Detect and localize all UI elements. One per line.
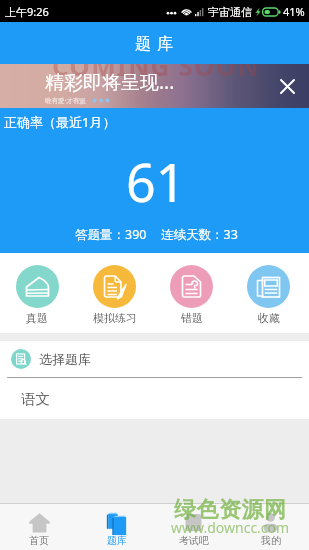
button[interactable]: 真题 xyxy=(0,265,76,325)
staticText: 真题 xyxy=(26,311,48,325)
button[interactable]: 题库 xyxy=(78,504,155,550)
staticText: 题库 xyxy=(107,534,127,547)
staticText: 首页 xyxy=(29,534,49,547)
button[interactable]: 考试吧 xyxy=(155,504,232,550)
button[interactable]: 首页 xyxy=(0,504,78,550)
staticText: 答题量：390 xyxy=(75,226,147,243)
staticText: 绿色资源网 xyxy=(174,496,287,524)
staticText: COMING SOON xyxy=(52,64,260,83)
staticText: 宇宙通信 xyxy=(208,5,252,19)
button[interactable]: 收藏 xyxy=(230,265,307,325)
staticText: 模拟练习 xyxy=(93,311,137,325)
button[interactable]: 我的 xyxy=(232,504,309,550)
button[interactable]: 错题 xyxy=(153,265,230,325)
button[interactable]: 语文 xyxy=(0,378,309,419)
staticText: 收藏 xyxy=(258,311,280,325)
button[interactable]: Close banner xyxy=(265,64,309,108)
button[interactable]: 模拟练习 xyxy=(76,265,153,325)
staticText: www.downcc.com xyxy=(171,518,290,537)
staticText: 上午9:26 xyxy=(5,4,49,19)
staticText: 错题 xyxy=(181,311,203,325)
staticText: 连续天数：33 xyxy=(161,226,238,243)
staticText: 语文 xyxy=(21,390,50,408)
staticText: 精彩即将呈现... xyxy=(45,69,175,95)
staticText: 我的 xyxy=(261,534,281,547)
staticText: 正确率（最近1月） xyxy=(4,113,116,131)
staticText: 选择题库 xyxy=(39,351,91,367)
staticText: 考试吧 xyxy=(179,534,209,547)
staticText: 41% xyxy=(283,4,305,19)
staticText: 题 库 xyxy=(135,32,175,54)
staticText: 61 xyxy=(126,146,186,217)
staticText: 唯有爱·才有派 xyxy=(45,96,86,105)
